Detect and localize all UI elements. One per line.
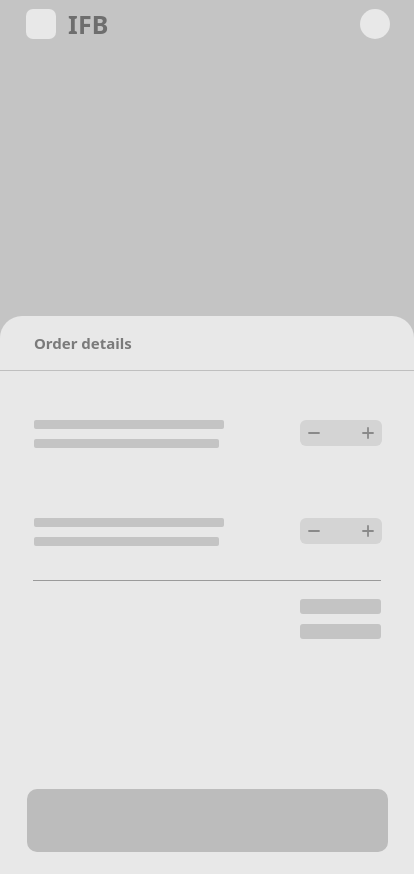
button[interactable]: Decrease quantity bbox=[300, 420, 328, 446]
button[interactable]: Decrease quantity bbox=[300, 518, 328, 544]
staticText: IFB bbox=[68, 7, 109, 41]
button[interactable]: Brand logo bbox=[26, 9, 56, 39]
button[interactable]: Increase quantity bbox=[354, 420, 382, 446]
button[interactable]: Account bbox=[360, 9, 390, 39]
button[interactable]: Increase quantity bbox=[354, 518, 382, 544]
staticText: Order details bbox=[34, 333, 132, 353]
